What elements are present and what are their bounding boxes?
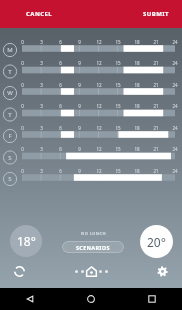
staticText: 15 — [115, 82, 121, 88]
staticText: 24 — [172, 39, 178, 45]
staticText: 24 — [172, 125, 178, 131]
button[interactable]: CANCEL — [20, 5, 59, 23]
staticText: 3 — [40, 39, 43, 45]
staticText: 15 — [115, 103, 121, 109]
staticText: 9 — [78, 39, 81, 45]
button[interactable]: 20° — [140, 225, 173, 258]
staticText: SUBMIT — [143, 10, 169, 18]
staticText: 9 — [78, 103, 81, 109]
staticText: 0 — [21, 60, 24, 66]
staticText: 6 — [59, 125, 62, 131]
button[interactable]: M — [3, 43, 17, 57]
staticText: 24 — [172, 82, 178, 88]
button[interactable]: SUBMIT — [137, 5, 175, 23]
staticText: 12 — [96, 125, 102, 131]
staticText: S — [8, 154, 12, 162]
staticText: 15 — [115, 168, 121, 174]
staticText: 3 — [40, 125, 43, 131]
button[interactable]: Home — [83, 291, 99, 307]
staticText: F — [8, 132, 12, 140]
staticText: M — [7, 46, 13, 54]
staticText: 21 — [153, 82, 159, 88]
staticText: 0 — [21, 146, 24, 152]
button[interactable]: F — [3, 129, 17, 143]
staticText: 20° — [147, 234, 166, 250]
staticText: 0 — [21, 82, 24, 88]
staticText: 15 — [115, 60, 121, 66]
staticText: 3 — [40, 168, 43, 174]
staticText: 15 — [115, 39, 121, 45]
staticText: 6 — [59, 103, 62, 109]
button[interactable]: T — [3, 108, 17, 122]
staticText: 18 — [134, 82, 140, 88]
staticText: 6 — [59, 168, 62, 174]
staticText: 12 — [96, 82, 102, 88]
staticText: 12 — [96, 103, 102, 109]
staticText: 3 — [40, 60, 43, 66]
staticText: W — [7, 89, 13, 97]
staticText: 9 — [78, 146, 81, 152]
staticText: 12 — [96, 60, 102, 66]
button[interactable]: Home — [83, 263, 99, 279]
staticText: 18 — [134, 39, 140, 45]
button[interactable]: Refresh — [11, 263, 27, 279]
button[interactable]: Recents — [144, 291, 160, 307]
staticText: 15 — [115, 146, 121, 152]
staticText: 21 — [153, 125, 159, 131]
staticText: 18° — [17, 233, 36, 249]
button[interactable]: W — [3, 86, 17, 100]
button[interactable]: SCENARIOS — [62, 241, 124, 253]
button[interactable]: 18° — [10, 225, 42, 257]
staticText: 24 — [172, 146, 178, 152]
staticText: 18 — [134, 103, 140, 109]
staticText: 6 — [59, 146, 62, 152]
staticText: T — [8, 111, 12, 119]
staticText: 24 — [172, 168, 178, 174]
button[interactable]: T — [3, 65, 17, 79]
staticText: 18 — [134, 168, 140, 174]
staticText: 18 — [134, 125, 140, 131]
staticText: SCENARIOS — [76, 244, 110, 251]
staticText: 6 — [59, 82, 62, 88]
staticText: 0 — [21, 39, 24, 45]
staticText: 12 — [96, 146, 102, 152]
staticText: 24 — [172, 60, 178, 66]
staticText: CANCEL — [26, 10, 53, 18]
staticText: 3 — [40, 146, 43, 152]
button[interactable]: S — [3, 151, 17, 165]
staticText: 9 — [78, 82, 81, 88]
staticText: 9 — [78, 60, 81, 66]
staticText: NO LUNCH — [81, 231, 106, 236]
staticText: 3 — [40, 82, 43, 88]
staticText: 21 — [153, 103, 159, 109]
staticText: 0 — [21, 168, 24, 174]
staticText: 21 — [153, 146, 159, 152]
button[interactable]: Back — [22, 291, 38, 307]
staticText: 15 — [115, 125, 121, 131]
staticText: 9 — [78, 125, 81, 131]
staticText: 12 — [96, 39, 102, 45]
staticText: 21 — [153, 39, 159, 45]
staticText: 0 — [21, 125, 24, 131]
button[interactable]: S — [3, 172, 17, 186]
staticText: 6 — [59, 39, 62, 45]
staticText: 21 — [153, 168, 159, 174]
staticText: 12 — [96, 168, 102, 174]
staticText: 18 — [134, 60, 140, 66]
staticText: 0 — [21, 103, 24, 109]
staticText: 6 — [59, 60, 62, 66]
staticText: S — [8, 175, 12, 183]
staticText: T — [8, 68, 12, 76]
staticText: 18 — [134, 146, 140, 152]
staticText: 24 — [172, 103, 178, 109]
button[interactable]: Settings — [154, 263, 170, 279]
staticText: 3 — [40, 103, 43, 109]
staticText: 9 — [78, 168, 81, 174]
staticText: 21 — [153, 60, 159, 66]
